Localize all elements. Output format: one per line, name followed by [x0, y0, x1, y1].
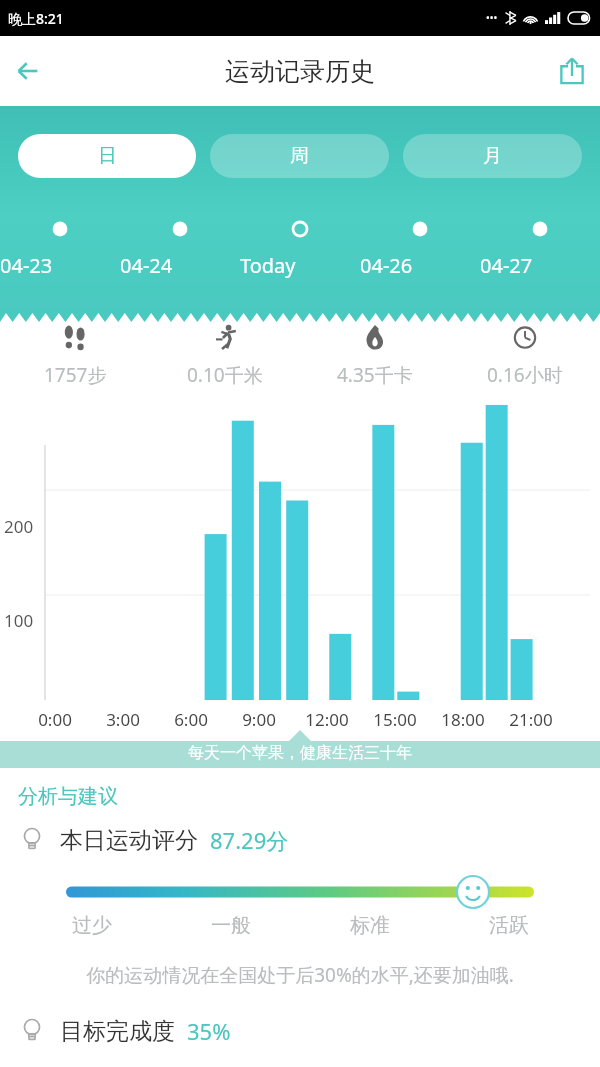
staticText: 0.10千米: [187, 362, 263, 388]
button[interactable]: 04-23: [0, 220, 120, 279]
staticText: 你的运动情况在全国处于后30%的水平,还要加油哦.: [12, 962, 588, 988]
staticText: 月: [483, 144, 502, 168]
staticText: 晚上8:21: [8, 9, 64, 28]
staticText: 3:00: [93, 708, 153, 731]
staticText: 活跃: [489, 913, 529, 938]
staticText: 18:00: [433, 708, 493, 731]
staticText: 目标完成度: [60, 1017, 175, 1046]
button[interactable]: 日: [18, 134, 196, 178]
staticText: 日: [98, 144, 117, 168]
button[interactable]: 04-26: [360, 220, 480, 279]
staticText: 87.29分: [210, 825, 289, 855]
staticText: 200: [4, 515, 34, 538]
button[interactable]: 周: [210, 134, 389, 178]
staticText: •••: [486, 11, 498, 25]
button[interactable]: 0.10千米: [150, 322, 300, 388]
staticText: 周: [290, 144, 309, 168]
staticText: 12:00: [297, 708, 357, 731]
button[interactable]: Share: [544, 43, 600, 99]
staticText: 04-26: [360, 252, 480, 279]
button[interactable]: 目标完成度: [0, 1016, 600, 1046]
staticText: Today: [240, 252, 360, 279]
staticText: 运动记录历史: [225, 56, 375, 87]
button[interactable]: 04-27: [480, 220, 600, 279]
staticText: 4.35千卡: [337, 362, 413, 388]
staticText: 标准: [350, 913, 390, 938]
staticText: 本日运动评分: [60, 826, 198, 855]
button[interactable]: Back: [0, 43, 56, 99]
staticText: 21:00: [501, 708, 561, 731]
button[interactable]: Today: [240, 220, 360, 279]
button[interactable]: 4.35千卡: [300, 322, 450, 388]
staticText: 04-27: [480, 252, 600, 279]
staticText: 35%: [187, 1016, 231, 1046]
staticText: 分析与建议: [18, 784, 118, 809]
staticText: 04-23: [0, 252, 120, 279]
staticText: 一般: [211, 913, 251, 938]
button[interactable]: 本日运动评分: [0, 825, 600, 855]
staticText: 1757步: [44, 362, 107, 388]
staticText: 每天一个苹果，健康生活三十年: [188, 743, 412, 763]
staticText: 0.16小时: [487, 362, 563, 388]
button[interactable]: 0.16小时: [450, 322, 600, 388]
staticText: 6:00: [161, 708, 221, 731]
button[interactable]: 04-24: [120, 220, 240, 279]
staticText: 过少: [72, 913, 112, 938]
staticText: 9:00: [229, 708, 289, 731]
button[interactable]: 1757步: [0, 322, 150, 388]
staticText: 0:00: [25, 708, 85, 731]
button[interactable]: 月: [403, 134, 582, 178]
staticText: 04-24: [120, 252, 240, 279]
staticText: 15:00: [365, 708, 425, 731]
staticText: 100: [4, 609, 34, 632]
